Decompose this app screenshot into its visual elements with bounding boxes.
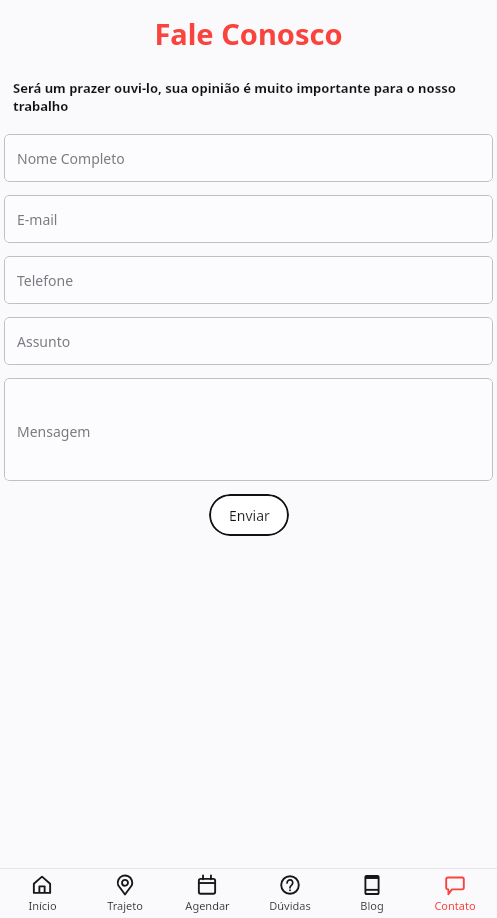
staticText: Enviar [229,506,270,525]
button[interactable]: Enviar [209,494,289,536]
staticText: Mensagem [17,422,91,441]
button[interactable]: Contato [415,874,495,913]
button[interactable]: Dúvidas [250,874,330,913]
button[interactable]: Agendar [167,874,247,913]
button[interactable]: E-mail [4,195,493,243]
button[interactable]: Blog [332,874,412,913]
staticText: Trajeto [107,898,143,913]
staticText: Será um prazer ouvi-lo, sua opinião é mu… [13,79,469,115]
button[interactable]: Telefone [4,256,493,304]
staticText: Dúvidas [269,898,311,913]
button[interactable]: Assunto [4,317,493,365]
button[interactable]: Início [2,874,82,913]
button[interactable]: Nome Completo [4,134,493,182]
button[interactable]: Mensagem [4,378,493,481]
staticText: E-mail [17,210,58,229]
staticText: Início [28,898,57,913]
button[interactable]: Trajeto [85,874,165,913]
staticText: Fale Conosco [0,14,497,53]
staticText: Telefone [17,271,74,290]
staticText: Agendar [185,898,230,913]
staticText: Nome Completo [17,149,125,168]
staticText: Contato [434,898,476,913]
staticText: Assunto [17,332,71,351]
staticText: Blog [360,898,384,913]
